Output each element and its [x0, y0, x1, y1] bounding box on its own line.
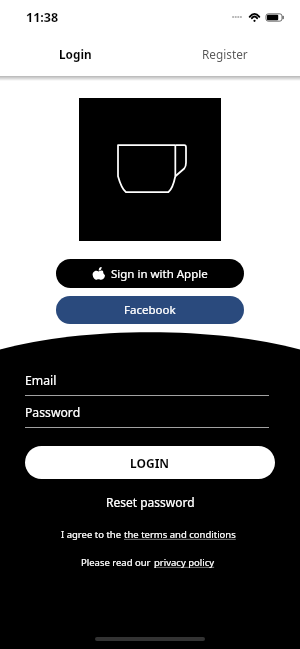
button[interactable]: privacy policy — [154, 556, 215, 569]
button[interactable]: Facebook — [56, 296, 244, 324]
staticText: Sign in with Apple — [111, 266, 208, 282]
staticText: Please read our — [81, 556, 154, 569]
staticText: Password — [25, 404, 81, 421]
staticText: Facebook — [124, 302, 176, 318]
staticText: Login — [59, 46, 92, 62]
staticText: 11:38 — [26, 9, 59, 26]
staticText: LOGIN — [130, 455, 170, 471]
button[interactable]: Login — [0, 31, 150, 76]
button[interactable]: Email — [25, 372, 269, 396]
button[interactable]: Register — [150, 31, 300, 76]
button[interactable]: Sign in with Apple — [56, 259, 244, 288]
button[interactable]: LOGIN — [25, 446, 275, 479]
button[interactable]: Password — [25, 404, 269, 428]
staticText: Register — [202, 46, 248, 62]
staticText: I agree to the — [61, 528, 124, 541]
button[interactable]: Reset password — [100, 491, 201, 513]
staticText: Email — [25, 372, 57, 389]
button[interactable]: the terms and conditions — [124, 528, 236, 541]
